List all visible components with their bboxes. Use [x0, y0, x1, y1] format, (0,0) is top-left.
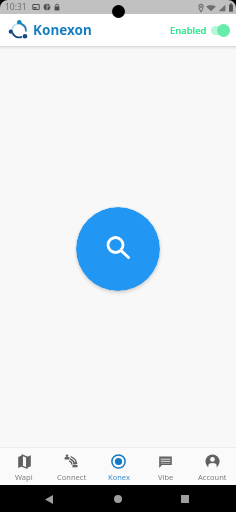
- staticText: Vibe: [158, 472, 174, 482]
- button[interactable]: Enabled: [170, 24, 230, 37]
- button[interactable]: Search: [76, 207, 160, 291]
- button[interactable]: Vibe: [142, 448, 189, 485]
- staticText: Konexon: [33, 21, 92, 39]
- staticText: Enabled: [170, 24, 207, 37]
- button[interactable]: Home: [106, 487, 130, 511]
- button[interactable]: Konex: [95, 448, 142, 485]
- button[interactable]: Account: [189, 448, 236, 485]
- staticText: Account: [198, 472, 227, 482]
- staticText: Konex: [108, 472, 130, 482]
- staticText: Wapi: [15, 472, 33, 482]
- staticText: Connect: [57, 472, 87, 482]
- staticText: 10:31: [5, 1, 27, 13]
- button[interactable]: Back: [37, 487, 61, 511]
- button[interactable]: Recents: [173, 487, 197, 511]
- button[interactable]: Connect: [48, 448, 95, 485]
- button[interactable]: Wapi: [0, 448, 48, 485]
